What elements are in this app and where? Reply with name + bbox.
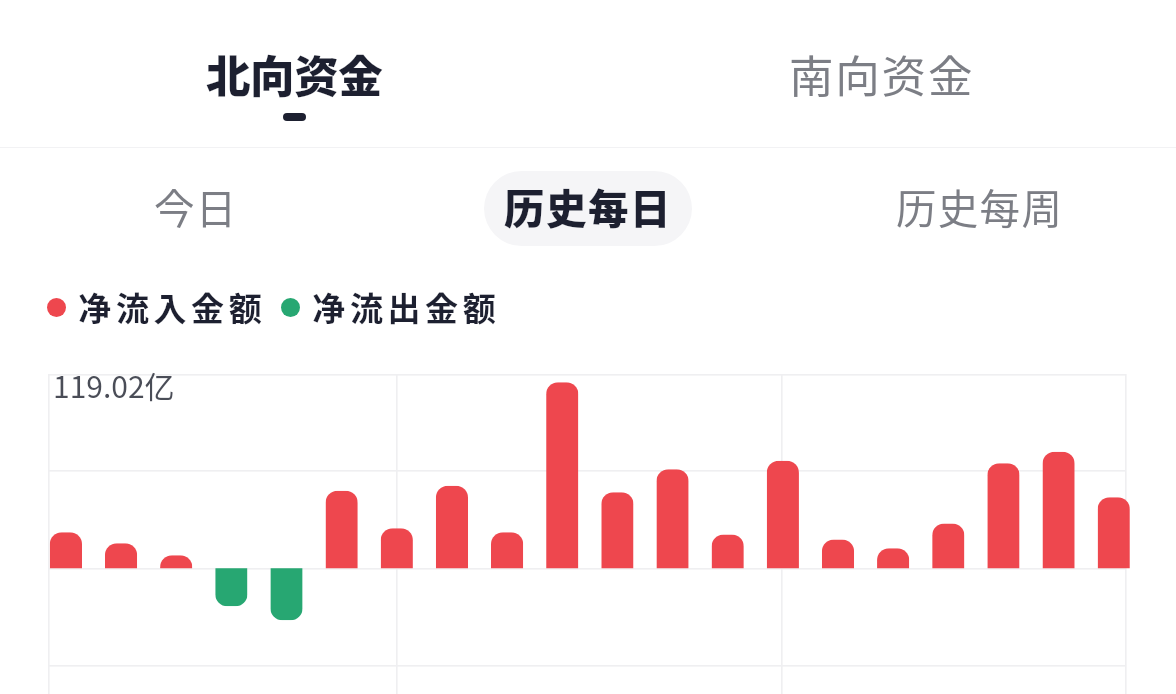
staticText: 净流入金额 [76,283,264,331]
button[interactable]: 今日 [134,171,258,246]
staticText: 净流出金额 [310,283,498,331]
staticText: 南向资金 [789,41,975,105]
staticText: 今日 [154,177,238,236]
button[interactable]: 南向资金 [588,0,1176,147]
button[interactable]: 北向资金 [0,0,588,147]
button[interactable]: 历史每周 [876,171,1084,246]
staticText: 历史每日 [504,177,672,236]
staticText: 历史每周 [896,177,1064,236]
staticText: 北向资金 [206,41,383,105]
button[interactable]: 历史每日 [484,171,692,246]
other: 净流出金额图例 [281,298,300,317]
staticText: 119.02亿 [53,363,175,406]
other: 净流入金额图例 [47,298,66,317]
